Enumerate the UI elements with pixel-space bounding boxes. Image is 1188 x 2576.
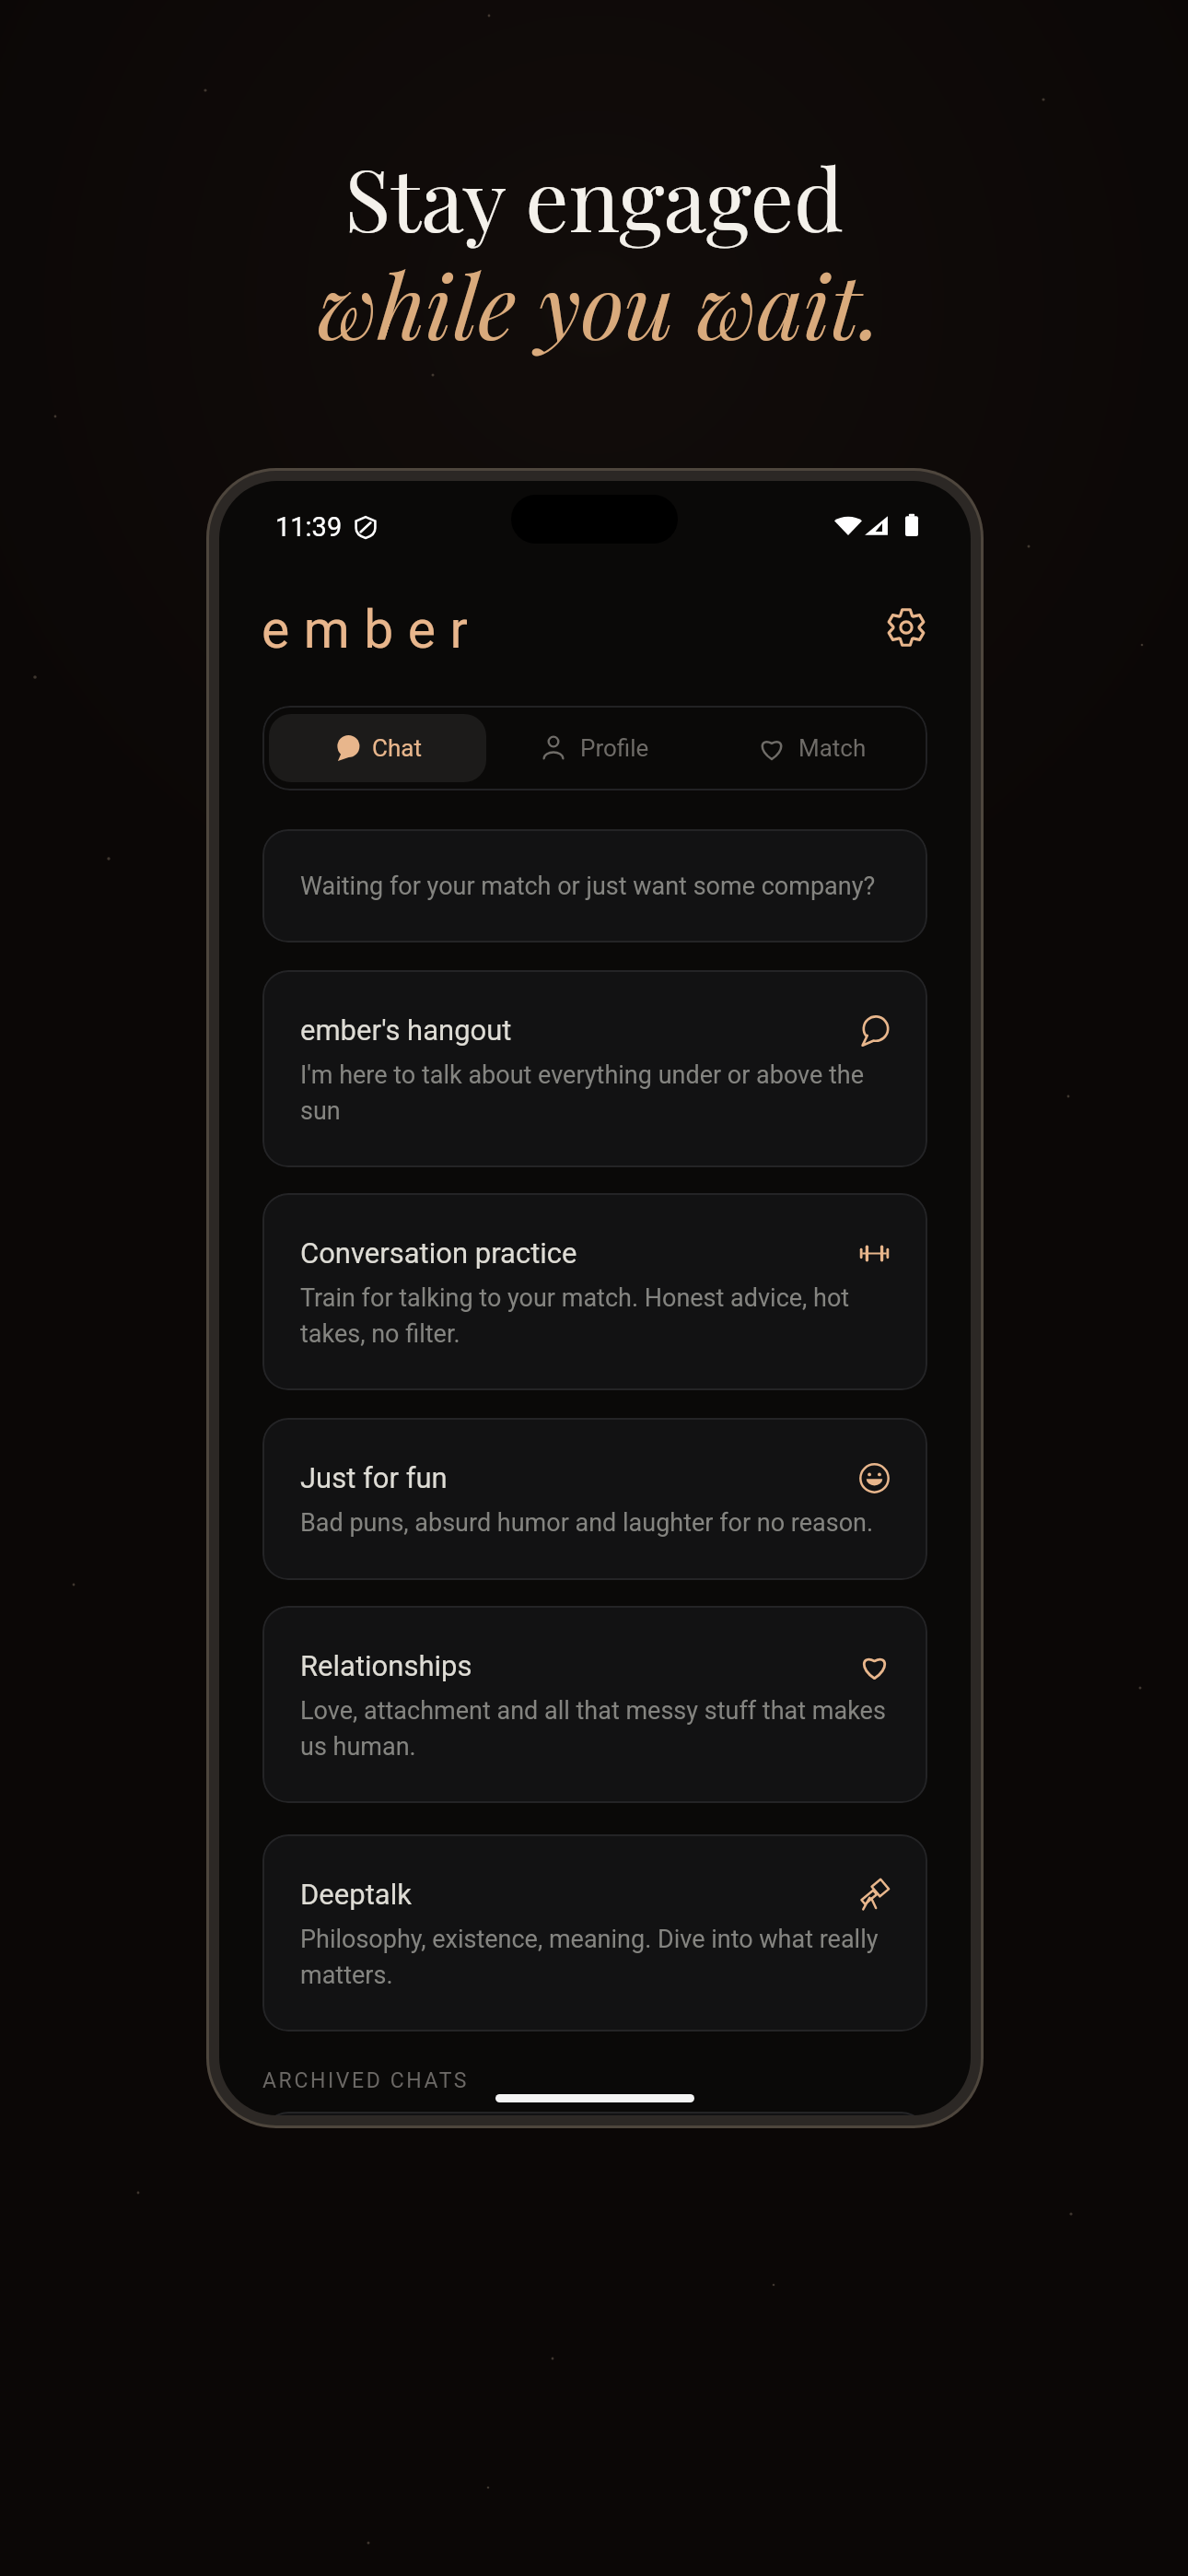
button[interactable]: Settings	[879, 601, 933, 654]
staticText: Chat	[372, 734, 422, 762]
button[interactable]: Chat	[269, 714, 486, 782]
staticText: Stay engaged	[0, 139, 1188, 253]
staticText: Match	[798, 734, 867, 762]
staticText: Bad puns, absurd humor and laughter for …	[300, 1508, 874, 1538]
staticText: Train for talking to your match. Honest …	[300, 1283, 890, 1348]
staticText: Waiting for your match or just want some…	[300, 872, 876, 901]
staticText: Profile	[580, 734, 649, 762]
staticText: ember	[262, 599, 483, 656]
button[interactable]: Match	[704, 714, 921, 782]
button[interactable]: Relationships	[262, 1606, 927, 1803]
staticText: 11:39	[275, 511, 343, 543]
staticText: while you wait.	[6, 244, 1188, 362]
button[interactable]: Deeptalk	[262, 1834, 927, 2032]
button[interactable]: Waiting for your match or just want some…	[262, 829, 927, 943]
staticText: Philosophy, existence, meaning. Dive int…	[300, 1925, 890, 1989]
button[interactable]: ember's hangout	[262, 970, 927, 1167]
button[interactable]: Profile	[486, 714, 704, 782]
staticText: Love, attachment and all that messy stuf…	[300, 1696, 890, 1761]
staticText: Conversation practice	[300, 1236, 577, 1270]
staticText: Relationships	[300, 1649, 472, 1682]
staticText: Just for fun	[300, 1461, 448, 1494]
button[interactable]	[262, 2112, 927, 2115]
button[interactable]: Conversation practice	[262, 1193, 927, 1390]
staticText: Deeptalk	[300, 1878, 412, 1911]
staticText: ARCHIVED CHATS	[262, 2068, 470, 2093]
staticText: ember's hangout	[300, 1013, 512, 1047]
staticText: I'm here to talk about everything under …	[300, 1060, 890, 1125]
button[interactable]: Just for fun	[262, 1418, 927, 1580]
